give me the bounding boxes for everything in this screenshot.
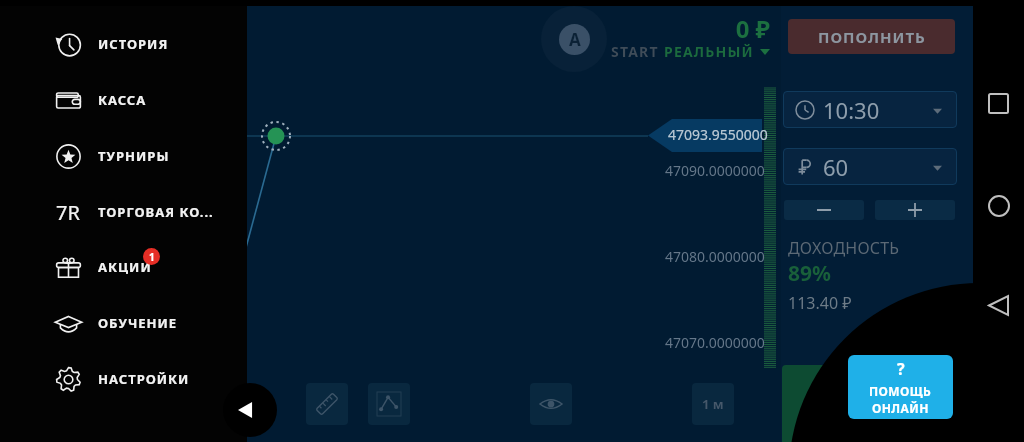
button[interactable]: Home [985,192,1012,219]
staticText: НАСТРОЙКИ [98,370,190,388]
staticText: ПОПОЛНИТЬ [818,27,926,47]
button[interactable]: ПОПОЛНИТЬ [788,19,955,54]
staticText: ОБУЧЕНИЕ [98,314,178,332]
button[interactable]: КАССА [0,72,247,128]
button[interactable]: 60 [783,148,957,185]
button[interactable]: 10:30 [783,91,957,128]
button[interactable]: Indicators [368,383,410,425]
button[interactable]: ОБУЧЕНИЕ [0,295,247,351]
button[interactable]: Buy up [782,365,892,442]
staticText: 113.40 ₽ [788,292,852,314]
button[interactable]: Account [541,6,607,72]
staticText: ТУРНИРЫ [98,147,170,165]
button[interactable]: ИСТОРИЯ [0,16,247,72]
button[interactable]: Decrease [784,200,864,220]
staticText: 10:30 [823,95,880,125]
staticText: КАССА [98,91,147,109]
button[interactable]: Close menu [223,383,277,437]
button[interactable]: Back [985,292,1012,319]
staticText: ИСТОРИЯ [98,35,169,53]
staticText: A [569,28,581,51]
button[interactable]: ТУРНИРЫ [0,128,247,184]
button[interactable]: АКЦИИ [0,239,247,295]
staticText: РЕАЛЬНЫЙ [664,42,754,61]
button[interactable]: Ruler [306,383,348,425]
button[interactable]: ? [848,355,953,419]
staticText: ПОМОЩЬ [869,383,932,399]
staticText: АКЦИИ [98,258,152,276]
staticText: 89% [788,259,831,288]
staticText: 1 м [702,395,724,413]
button[interactable]: Recents [985,90,1012,117]
staticText: 47080.0000000 [665,247,765,266]
staticText: 0 ₽ [587,12,770,45]
staticText: 60 [823,152,849,182]
staticText: 47090.0000000 [665,161,765,180]
button[interactable]: Increase [875,200,955,220]
staticText: ДОХОДНОСТЬ [788,237,900,259]
button[interactable]: 7R [0,184,247,240]
staticText: 47070.0000000 [665,333,765,352]
staticText: ? [897,358,905,380]
staticText: 47093.9550000 [668,125,768,144]
button[interactable]: 1 м [692,383,734,425]
staticText: ТОРГОВАЯ КО... [98,203,214,221]
staticText: 1 [149,250,155,264]
staticText: ОНЛАЙН [872,400,929,416]
staticText: START [611,42,664,61]
button[interactable]: НАСТРОЙКИ [0,351,247,407]
button[interactable]: Visibility [530,383,572,425]
staticText: 7R [56,199,80,226]
